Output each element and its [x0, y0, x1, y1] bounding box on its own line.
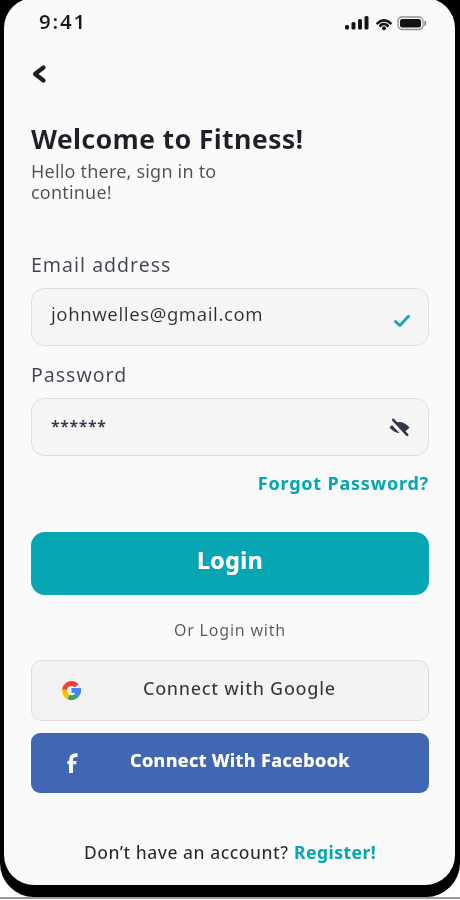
staticText: Don’t have an account?	[84, 840, 294, 864]
button[interactable]: ******	[31, 398, 429, 456]
staticText: 9:41	[39, 7, 88, 35]
button[interactable]: johnwelles@gmail.com	[31, 288, 429, 346]
staticText: Connect with Google	[143, 676, 336, 701]
staticText: Hello there, sign in to continue!	[31, 159, 217, 204]
button[interactable]: Connect With Facebook	[31, 733, 429, 793]
staticText: Email address	[31, 251, 172, 278]
staticText: Welcome to Fitness!	[31, 120, 304, 157]
staticText: Connect With Facebook	[130, 748, 350, 773]
button[interactable]: Connect with Google	[31, 660, 429, 721]
button[interactable]: Register!	[294, 840, 377, 864]
staticText: Login	[197, 544, 264, 575]
staticText: Password	[31, 361, 128, 388]
button[interactable]: Login	[31, 532, 429, 595]
button[interactable]: Forgot Password?	[0, 471, 429, 496]
staticText: johnwelles@gmail.com	[51, 301, 264, 326]
staticText: ******	[51, 415, 107, 437]
staticText: Or Login with	[0, 619, 460, 641]
button[interactable]	[17, 52, 61, 96]
